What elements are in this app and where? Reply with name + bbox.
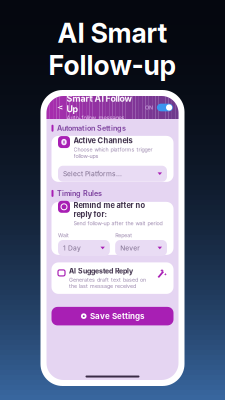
staticText: Active Channels <box>73 136 132 145</box>
button[interactable]: 1 Day <box>58 240 110 256</box>
staticText: Choose which platforms trigger follow-up… <box>73 146 152 159</box>
staticText: Timing Rules <box>57 189 102 198</box>
staticText: Send follow-up after the wait period <box>73 220 162 227</box>
button[interactable]: Never <box>115 240 167 256</box>
staticText: Follow-up <box>48 49 176 82</box>
staticText: Auto-follow messages <box>66 115 124 122</box>
button[interactable]: AI Suggested Reply <box>51 262 173 294</box>
staticText: Never <box>120 244 140 252</box>
staticText: Save Settings <box>90 311 144 321</box>
button[interactable]: Back <box>52 96 66 119</box>
staticText: Generates draft text based on the last m… <box>69 276 146 289</box>
staticText: 1 Day <box>63 244 81 252</box>
staticText: Automation Settings <box>57 124 126 132</box>
staticText: Select Platforms... <box>63 170 122 178</box>
button[interactable]: Toggle follow-up <box>157 104 173 111</box>
button[interactable]: Save Settings <box>51 307 173 325</box>
staticText: Wait <box>58 232 69 238</box>
button[interactable]: Select Platforms... <box>58 166 167 182</box>
staticText: ON <box>145 104 153 111</box>
staticText: Remind me after no reply for: <box>73 201 145 219</box>
staticText: Smart AI Follow Up <box>66 93 131 114</box>
staticText: AI Suggested Reply <box>69 267 133 275</box>
staticText: Repeat <box>115 232 132 238</box>
button[interactable]: Active Channels <box>51 136 173 182</box>
staticText: AI Smart <box>57 17 167 49</box>
